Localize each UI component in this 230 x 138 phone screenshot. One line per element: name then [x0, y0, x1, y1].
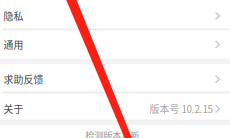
staticText: 隐私 — [3, 9, 23, 23]
button[interactable]: 通用 — [0, 30, 230, 59]
staticText: 版本号 10.2.15 — [149, 102, 212, 116]
staticText: 通用 — [3, 37, 23, 52]
staticText: 检测版本更新 — [85, 128, 139, 138]
staticText: 求助反馈 — [3, 72, 43, 86]
button[interactable]: 求助反馈 — [0, 65, 230, 93]
button[interactable]: 关于 — [0, 94, 230, 123]
staticText: 关于 — [3, 102, 23, 116]
button[interactable]: 隐私 — [0, 2, 230, 30]
